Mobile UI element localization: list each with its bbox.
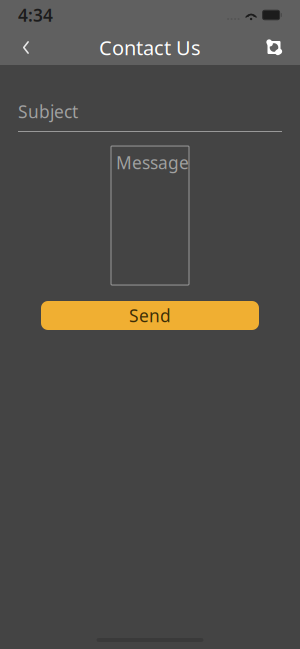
button[interactable]: Subject xyxy=(18,101,282,131)
button[interactable]: Call xyxy=(254,30,294,64)
button[interactable]: Send xyxy=(41,301,259,330)
button[interactable]: Message xyxy=(111,146,189,285)
staticText: Contact Us xyxy=(99,34,201,61)
staticText: Subject xyxy=(18,100,78,123)
staticText: Message xyxy=(116,151,189,174)
button[interactable]: Back xyxy=(6,30,46,64)
staticText: 4:34 xyxy=(18,3,53,26)
staticText: Send xyxy=(129,304,171,327)
